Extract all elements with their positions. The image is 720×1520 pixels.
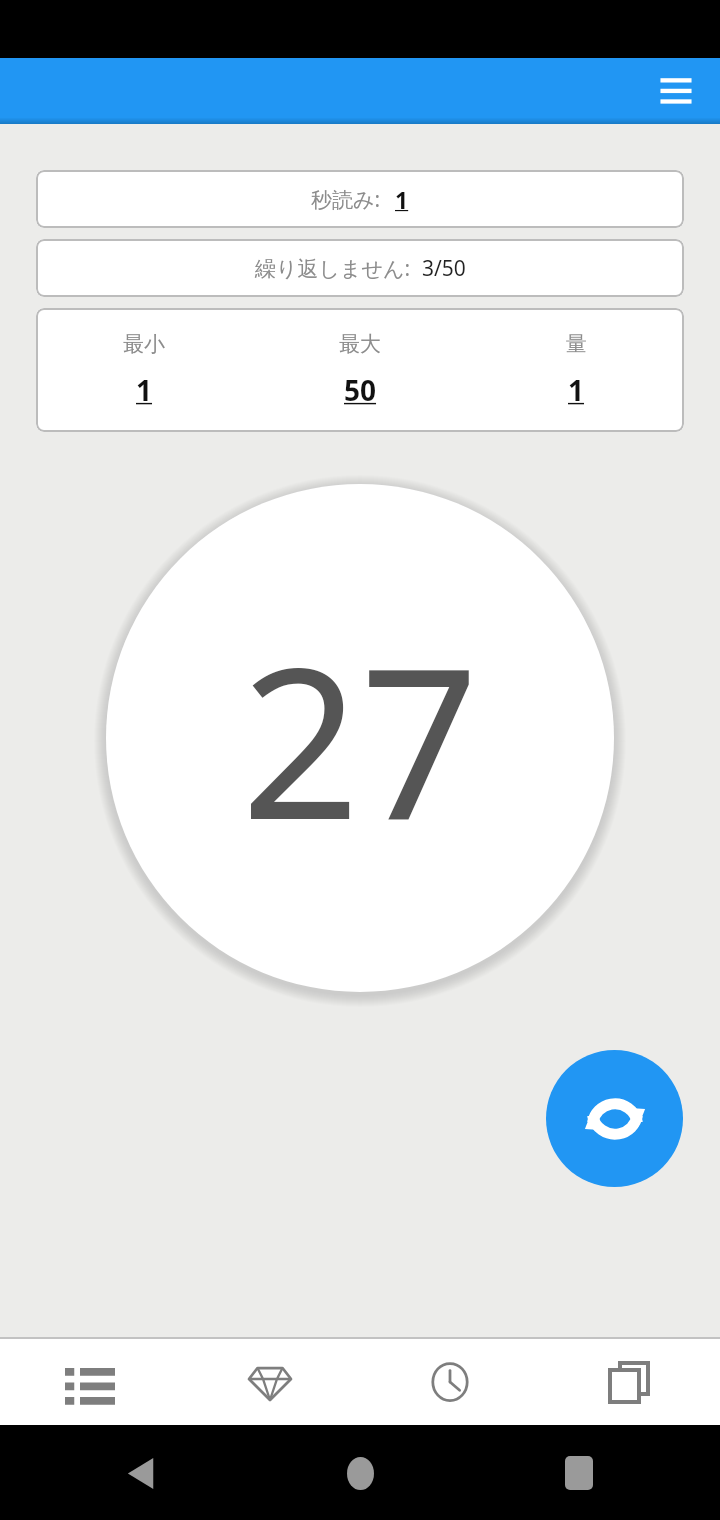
- staticText: 最小: [123, 331, 165, 357]
- staticText: 1: [136, 371, 153, 409]
- button[interactable]: Gems: [180, 1339, 360, 1425]
- button[interactable]: History: [360, 1339, 540, 1425]
- button[interactable]: Recents: [548, 1442, 610, 1504]
- staticText: 27: [241, 597, 479, 880]
- button[interactable]: 最小: [36, 308, 252, 432]
- button[interactable]: 最小: [36, 308, 684, 432]
- button[interactable]: Copies: [540, 1339, 720, 1425]
- staticText: 1: [568, 371, 585, 409]
- staticText: 量: [566, 331, 587, 357]
- staticText: 繰り返しません:: [255, 254, 411, 283]
- button[interactable]: Lists: [0, 1339, 180, 1425]
- staticText: 1: [395, 184, 409, 215]
- button[interactable]: Menu: [640, 58, 712, 124]
- staticText: 50: [344, 371, 377, 409]
- button[interactable]: 27: [100, 478, 620, 998]
- button[interactable]: Refresh: [546, 1050, 683, 1187]
- button[interactable]: Back: [110, 1442, 172, 1504]
- staticText: 秒読み:: [311, 185, 381, 214]
- button[interactable]: 繰り返しません:: [36, 239, 684, 297]
- button[interactable]: 量: [468, 308, 684, 432]
- staticText: 最大: [339, 331, 381, 357]
- staticText: 3/50: [422, 254, 466, 283]
- button[interactable]: 秒読み:: [36, 170, 684, 228]
- button[interactable]: 最大: [252, 308, 468, 432]
- button[interactable]: Home: [329, 1442, 391, 1504]
